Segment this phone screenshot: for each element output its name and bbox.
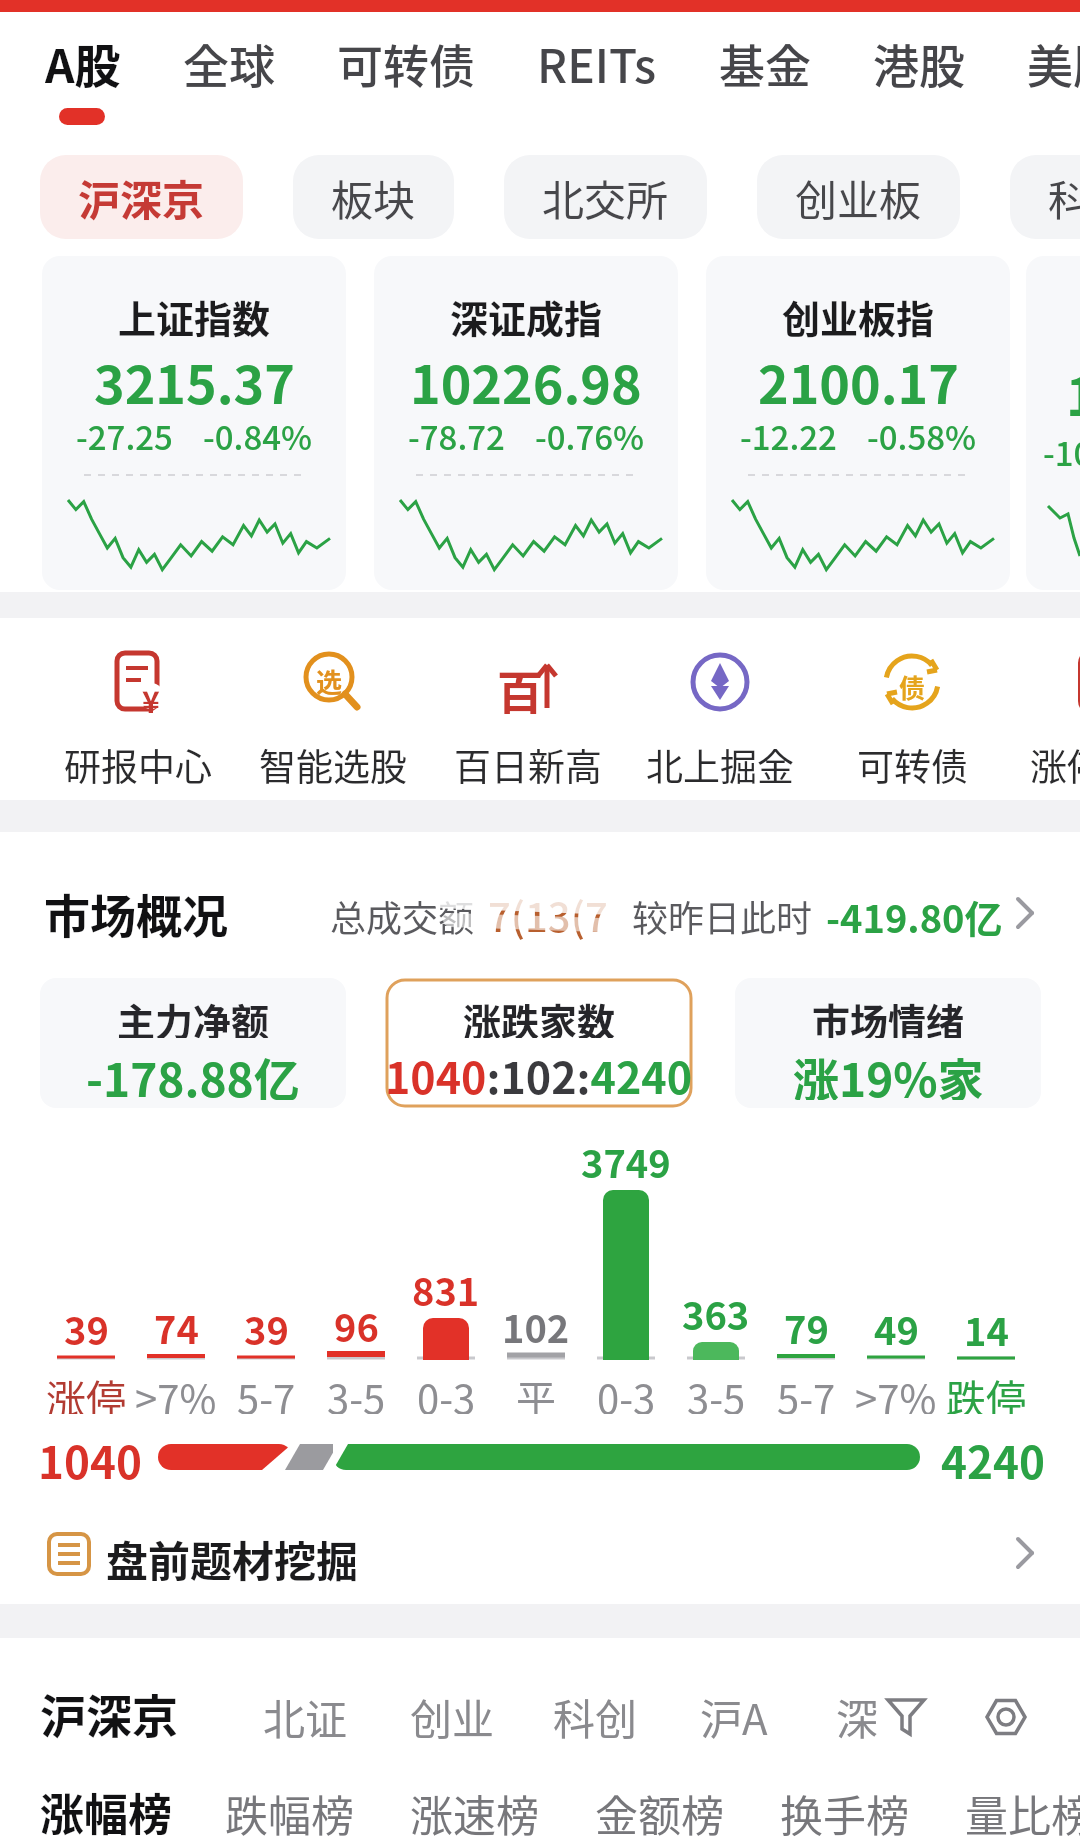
staticText: 沪深京 [78,167,205,228]
staticText: -78.72 [408,412,505,452]
button[interactable] [735,978,1041,1108]
staticText: 7(13(7 [488,886,608,944]
staticText: 创业板指 [782,289,935,344]
staticText: 10226.98 [410,344,642,412]
button[interactable]: 可转债 [337,30,475,96]
button[interactable]: 创业 [410,1686,495,1747]
staticText: -0.58% [867,412,977,452]
button[interactable]: 研报中心 [43,738,233,784]
staticText: 4240 [941,1428,1045,1488]
button[interactable]: ¥ [105,650,171,716]
staticText: 5-7 [237,1368,296,1414]
button[interactable]: 基金 [719,30,811,96]
button[interactable]: 板块 [293,155,454,239]
button[interactable]: 百 [495,650,561,716]
button[interactable]: 11032.21 [1026,256,1080,590]
staticText: 深证成指 [450,289,603,344]
staticText: 102 [502,1299,570,1343]
staticText: 涨停雷达 [1030,738,1080,784]
button[interactable]: 量比榜 [965,1782,1080,1837]
button[interactable]: 选 [300,650,366,716]
staticText: 0-3 [417,1368,476,1414]
staticText: 14 [964,1302,1009,1346]
button[interactable] [385,978,693,1108]
button[interactable] [40,978,346,1108]
staticText: 百 [497,656,543,722]
staticText: ¥ [142,678,160,721]
button[interactable]: 美股 [1027,30,1080,96]
staticText: 2100.17 [758,344,959,412]
staticText: 跌停 [946,1368,1026,1414]
staticText: 板块 [331,167,416,228]
button[interactable]: 债 [879,650,945,716]
staticText: 39 [244,1301,289,1345]
button[interactable] [320,876,1044,940]
staticText: 北上掘金 [646,738,794,784]
button[interactable]: 换手榜 [780,1782,909,1837]
staticText: -178.88亿 [86,1044,300,1100]
button[interactable]: 深 [836,1686,879,1747]
staticText: 上证指数 [118,289,271,344]
button[interactable]: 上证指数 [42,256,346,590]
staticText: -12.22 [740,412,837,452]
staticText: -10.21 [1043,428,1080,476]
staticText: 科创板 [1048,167,1080,228]
button[interactable]: 涨幅榜 [40,1780,172,1837]
button[interactable]: 涨停雷达 [1009,738,1080,784]
staticText: 沪深京 [40,1680,178,1747]
staticText: 主力净额 [117,992,270,1038]
staticText: 831 [412,1262,480,1306]
staticText: 11032.21 [1066,356,1080,431]
staticText: 创业板 [795,167,922,228]
staticText: 北交所 [542,167,669,228]
staticText: 3-5 [327,1368,386,1414]
button[interactable] [884,1696,928,1738]
staticText: 较昨日此时 [632,890,813,942]
button[interactable] [0,1512,1080,1604]
button[interactable]: 港股 [873,30,965,96]
staticText: 74 [154,1300,199,1344]
staticText: 盘前题材挖掘 [106,1528,359,1589]
staticText: 百日新高 [454,738,602,784]
staticText: >7% [135,1368,217,1414]
button[interactable] [1071,650,1080,716]
button[interactable]: 百日新高 [433,738,623,784]
staticText: 3215.37 [94,344,295,412]
button[interactable]: 金额榜 [595,1782,724,1837]
staticText: 96 [334,1298,379,1342]
button[interactable]: 科创 [553,1686,638,1747]
staticText: 平 [516,1368,556,1414]
button[interactable]: 涨速榜 [410,1782,539,1837]
staticText: 49 [874,1301,919,1345]
staticText: 债 [899,668,926,706]
staticText: 市场情绪 [812,992,965,1038]
button[interactable]: 智能选股 [238,738,428,784]
button[interactable]: 跌幅榜 [225,1782,354,1837]
staticText: 涨19%家 [793,1044,984,1100]
button[interactable]: 创业板 [757,155,960,239]
staticText: -419.80亿 [826,889,1003,944]
button[interactable]: 沪A [700,1686,768,1747]
button[interactable]: 全球 [183,30,275,96]
button[interactable] [687,650,753,716]
button[interactable] [982,1696,1030,1738]
button[interactable]: REITs [537,30,657,96]
staticText: 363 [682,1286,750,1330]
staticText: 39 [64,1301,109,1345]
staticText: 3-5 [687,1368,746,1414]
button[interactable]: 科创板 [1010,155,1080,239]
button[interactable]: A股 [45,30,121,96]
staticText: 总成交额 [330,890,475,942]
button[interactable]: 北证 [263,1686,348,1747]
button[interactable]: 深证成指 [374,256,678,590]
button[interactable]: 创业板指 [706,256,1010,590]
button[interactable]: 北交所 [504,155,707,239]
button[interactable]: 沪深京 [40,155,243,239]
button[interactable]: 北上掘金 [625,738,815,784]
staticText: 3749 [581,1134,671,1178]
staticText: -0.76% [535,412,645,452]
staticText: 1040 [38,1428,142,1488]
staticText: 智能选股 [259,738,407,784]
staticText: 可转债 [857,738,968,784]
button[interactable]: 可转债 [817,738,1007,784]
